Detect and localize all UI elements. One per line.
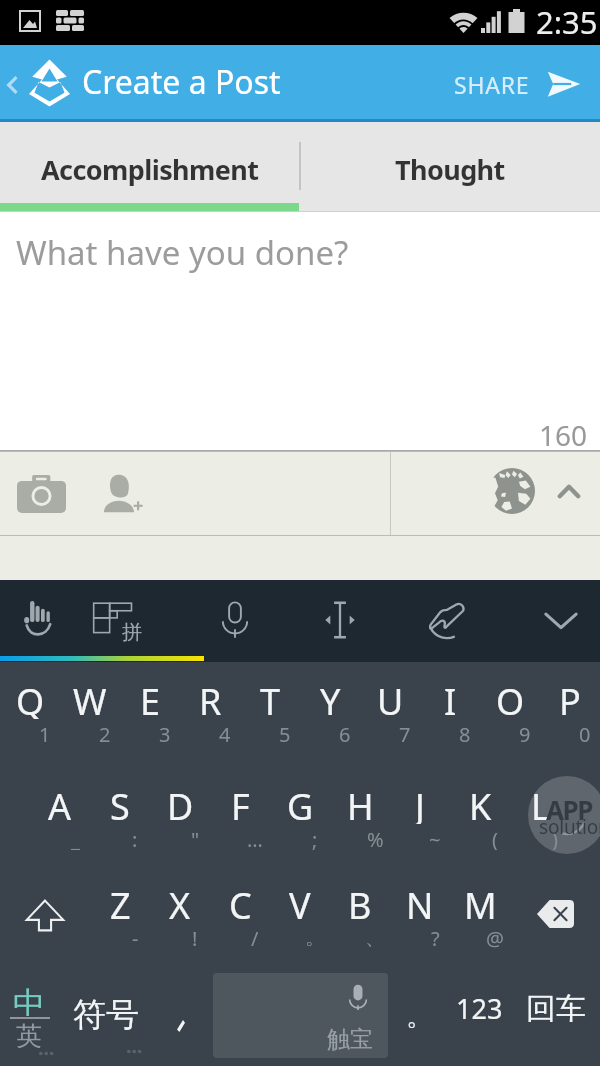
staticText: K: [469, 782, 492, 824]
button[interactable]: N: [390, 871, 450, 947]
button[interactable]: Z: [90, 871, 150, 947]
staticText: 。: [305, 925, 325, 949]
button[interactable]: K: [450, 772, 510, 848]
button[interactable]: 符号: [62, 968, 150, 1058]
button[interactable]: Accomplishment: [0, 122, 300, 212]
button[interactable]: X: [150, 871, 210, 947]
staticText: 123: [456, 990, 503, 1020]
staticText: SHARE: [454, 69, 530, 100]
button[interactable]: Q: [0, 667, 60, 743]
staticText: B: [348, 881, 372, 923]
staticText: 英: [16, 1020, 42, 1048]
button[interactable]: T: [240, 667, 300, 743]
staticText: !: [192, 925, 198, 949]
staticText: 触宝: [327, 1025, 373, 1051]
staticText: D: [167, 782, 194, 824]
button[interactable]: C: [210, 871, 270, 947]
button[interactable]: Add photo: [4, 460, 76, 528]
button[interactable]: D: [150, 772, 210, 848]
button[interactable]: Audience: [478, 459, 546, 527]
button[interactable]: SHARE: [444, 49, 592, 119]
staticText: ~: [429, 826, 441, 850]
button[interactable]: 回车: [512, 968, 600, 1058]
button[interactable]: R: [180, 667, 240, 743]
button[interactable]: Chinese English toggle: [0, 968, 62, 1058]
staticText: Accomplishment: [41, 151, 259, 188]
staticText: N: [406, 881, 434, 923]
staticText: ;: [312, 826, 318, 850]
staticText: I: [444, 677, 457, 719]
staticText: 3: [159, 721, 171, 745]
button[interactable]: O: [480, 667, 540, 743]
button[interactable]: Stroke input: [410, 580, 486, 662]
button[interactable]: V: [270, 871, 330, 947]
staticText: O: [496, 677, 525, 719]
staticText: 7: [399, 721, 411, 745]
button[interactable]: U: [360, 667, 420, 743]
staticText: T: [260, 677, 281, 719]
button[interactable]: F: [210, 772, 270, 848]
staticText: J: [415, 782, 425, 824]
staticText: U: [377, 677, 404, 719]
staticText: 中: [13, 984, 45, 1016]
staticText: 160: [539, 416, 588, 454]
staticText: 5: [279, 721, 291, 745]
button[interactable]: Shift: [6, 871, 86, 947]
staticText: M: [464, 881, 497, 923]
button[interactable]: A: [30, 772, 90, 848]
staticText: G: [287, 782, 314, 824]
staticText: 、: [365, 925, 385, 949]
button[interactable]: [150, 968, 212, 1058]
button[interactable]: Y: [300, 667, 360, 743]
button[interactable]: B: [330, 871, 390, 947]
staticText: solution: [539, 814, 600, 840]
staticText: -: [132, 925, 139, 949]
button[interactable]: Thought: [300, 122, 600, 212]
button[interactable]: 。: [390, 968, 448, 1058]
staticText: L: [531, 782, 550, 824]
button[interactable]: S: [90, 772, 150, 848]
button[interactable]: Backspace: [516, 871, 600, 947]
staticText: (: [492, 826, 498, 850]
button[interactable]: Expand options: [537, 463, 595, 521]
staticText: 9: [519, 721, 531, 745]
staticText: ): [552, 826, 558, 850]
staticText: %: [367, 826, 384, 850]
staticText: :: [132, 826, 138, 850]
button[interactable]: Hide keyboard: [523, 580, 599, 662]
staticText: S: [110, 782, 130, 824]
button[interactable]: 123: [448, 968, 510, 1058]
button[interactable]: Voice input: [197, 580, 273, 662]
button[interactable]: Create a Post: [26, 49, 281, 119]
staticText: H: [347, 782, 374, 824]
button[interactable]: W: [60, 667, 120, 743]
staticText: X: [169, 881, 191, 923]
button[interactable]: Handwriting: [3, 580, 79, 662]
button[interactable]: E: [120, 667, 180, 743]
button[interactable]: Back: [0, 57, 26, 113]
button[interactable]: G: [270, 772, 330, 848]
button[interactable]: Cursor: [302, 580, 378, 662]
button[interactable]: P: [540, 667, 600, 743]
button[interactable]: J: [390, 772, 450, 848]
staticText: 符号: [73, 994, 139, 1030]
staticText: Z: [110, 881, 131, 923]
staticText: ": [191, 826, 200, 850]
button[interactable]: Tag people: [86, 460, 154, 528]
button[interactable]: Space: [213, 973, 388, 1058]
button[interactable]: L: [510, 772, 570, 848]
button[interactable]: H: [330, 772, 390, 848]
staticText: 6: [339, 721, 351, 745]
staticText: _: [71, 826, 80, 850]
staticText: R: [199, 677, 222, 719]
staticText: @: [486, 925, 504, 949]
staticText: F: [231, 782, 250, 824]
staticText: 8: [459, 721, 471, 745]
staticText: Thought: [395, 151, 505, 188]
button[interactable]: I: [420, 667, 480, 743]
button[interactable]: Pinyin layout: [75, 580, 151, 662]
staticText: 4: [219, 721, 231, 745]
staticText: …: [247, 826, 263, 850]
staticText: P: [559, 677, 581, 719]
button[interactable]: M: [450, 871, 510, 947]
